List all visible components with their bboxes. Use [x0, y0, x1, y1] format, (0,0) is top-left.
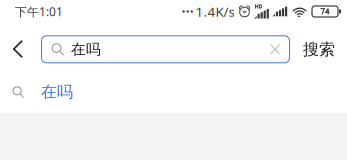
staticText: 搜索: [303, 39, 335, 59]
button[interactable]: 搜索: [296, 35, 342, 63]
button[interactable]: Clear search text: [270, 44, 280, 55]
staticText: 在吗: [71, 40, 101, 58]
staticText: 在吗: [41, 82, 73, 102]
button[interactable]: 在吗: [0, 73, 347, 111]
staticText: 下午1:01: [15, 3, 63, 19]
staticText: 1.4K/s: [195, 3, 234, 20]
button[interactable]: Back: [3, 34, 33, 64]
